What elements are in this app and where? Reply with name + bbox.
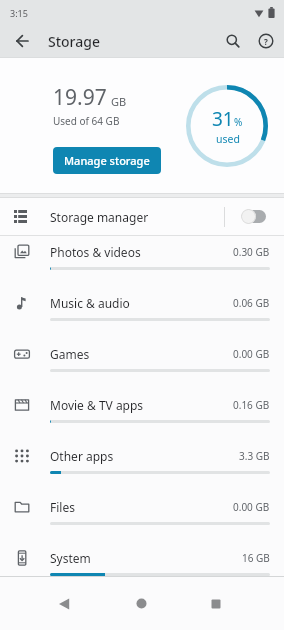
staticText: Games	[50, 346, 90, 362]
staticText: GB	[111, 94, 127, 109]
staticText: Music & audio	[50, 295, 130, 311]
staticText: 16 GB	[242, 551, 270, 565]
button[interactable]: Files	[0, 491, 284, 542]
button[interactable]: Storage manager	[0, 198, 284, 235]
staticText: Photos & videos	[50, 244, 141, 260]
staticText: ?	[264, 36, 268, 47]
button[interactable]: Movie & TV apps	[0, 389, 284, 440]
staticText: Files	[50, 499, 75, 515]
button[interactable]	[241, 209, 266, 224]
staticText: 0.30 GB	[233, 245, 270, 259]
button[interactable]	[211, 599, 221, 609]
staticText: 3.3 GB	[239, 449, 270, 463]
button[interactable]: Music & audio	[0, 287, 284, 338]
button[interactable]: Other apps	[0, 440, 284, 491]
staticText: System	[50, 550, 91, 566]
staticText: 0.00 GB	[233, 347, 270, 361]
button[interactable]	[136, 598, 147, 609]
staticText: 0.06 GB	[233, 296, 270, 310]
button[interactable]	[225, 33, 241, 49]
staticText: used	[216, 132, 240, 146]
button[interactable]: System	[0, 542, 284, 576]
staticText: 31	[212, 106, 234, 132]
button[interactable]: Manage storage	[53, 147, 161, 174]
staticText: Storage	[48, 32, 100, 51]
staticText: %	[234, 115, 243, 129]
button[interactable]: ?	[258, 33, 274, 49]
staticText: Manage storage	[64, 153, 150, 168]
staticText: 19.97	[53, 83, 107, 112]
button[interactable]: Photos & videos	[0, 236, 284, 287]
staticText: Storage manager	[50, 209, 149, 225]
button[interactable]	[58, 598, 70, 610]
button[interactable]: Games	[0, 338, 284, 389]
staticText: 0.00 GB	[233, 500, 270, 514]
staticText: Used of 64 GB	[53, 114, 120, 128]
staticText: Movie & TV apps	[50, 397, 144, 413]
button[interactable]	[14, 33, 30, 49]
staticText: 3:15	[10, 7, 28, 19]
staticText: 0.16 GB	[233, 398, 270, 412]
staticText: Other apps	[50, 448, 114, 464]
